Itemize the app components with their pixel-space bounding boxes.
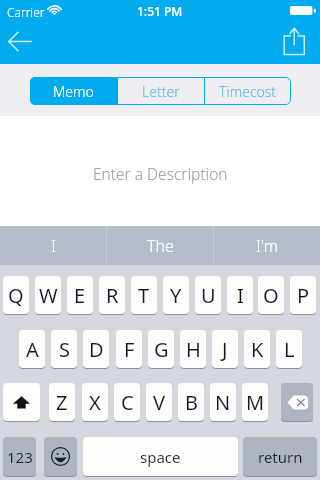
staticText: N [215, 389, 231, 416]
button[interactable]: U [195, 276, 221, 315]
button[interactable]: 123 [3, 437, 36, 477]
staticText: I [51, 235, 56, 257]
staticText: Carrier [7, 4, 45, 20]
staticText: M [246, 389, 265, 416]
staticText: W [39, 282, 58, 309]
button[interactable]: Share [280, 24, 314, 58]
button[interactable]: L [276, 330, 302, 369]
staticText: H [186, 336, 201, 363]
staticText: Q [8, 282, 24, 309]
button[interactable]: Timecost [205, 77, 291, 105]
staticText: Letter [142, 82, 180, 101]
button[interactable]: T [131, 276, 157, 315]
button[interactable]: K [244, 330, 270, 369]
button[interactable]: J [212, 330, 238, 369]
button[interactable]: I'm [214, 226, 320, 265]
button[interactable]: A [19, 330, 45, 369]
staticText: 123 [7, 447, 33, 467]
staticText: Z [56, 389, 68, 416]
staticText: Timecost [219, 82, 277, 101]
button[interactable]: V [146, 383, 172, 422]
button[interactable]: Emoji [44, 437, 77, 477]
staticText: G [154, 336, 169, 363]
staticText: F [124, 336, 135, 363]
staticText: J [222, 336, 228, 363]
button[interactable]: S [51, 330, 77, 369]
button[interactable]: Shift [3, 383, 40, 422]
staticText: O [263, 282, 279, 309]
staticText: B [185, 389, 198, 416]
button[interactable]: R [99, 276, 125, 315]
button[interactable]: M [242, 383, 268, 422]
button[interactable]: G [148, 330, 174, 369]
button[interactable]: space [83, 437, 238, 477]
staticText: T [138, 282, 150, 309]
staticText: K [251, 336, 264, 363]
staticText: The [147, 235, 174, 257]
button[interactable]: W [35, 276, 61, 315]
staticText: S [59, 336, 70, 363]
button[interactable]: Memo [30, 77, 117, 105]
button[interactable]: D [83, 330, 109, 369]
button[interactable]: Z [49, 383, 75, 422]
button[interactable]: C [114, 383, 140, 422]
staticText: return [258, 447, 303, 467]
staticText: R [106, 282, 119, 309]
button[interactable]: return [243, 437, 317, 477]
staticText: X [89, 389, 101, 416]
button[interactable]: H [180, 330, 206, 369]
staticText: U [201, 282, 216, 309]
button[interactable]: I [0, 226, 106, 265]
button[interactable]: E [67, 276, 93, 315]
staticText: Enter a Description [93, 163, 228, 184]
staticText: space [140, 447, 181, 467]
staticText: D [89, 336, 104, 363]
button[interactable]: Q [3, 276, 29, 315]
staticText: I'm [256, 235, 278, 257]
button[interactable]: F [116, 330, 142, 369]
staticText: L [284, 336, 295, 363]
button[interactable]: X [82, 383, 108, 422]
button[interactable]: I [227, 276, 253, 315]
staticText: V [153, 389, 165, 416]
button[interactable]: Letter [118, 77, 204, 105]
staticText: Y [170, 282, 182, 309]
staticText: I [237, 282, 244, 309]
staticText: 1:51 PM [137, 3, 183, 19]
button[interactable]: Delete [281, 383, 313, 422]
button[interactable]: O [258, 276, 284, 315]
button[interactable]: The [107, 226, 213, 265]
button[interactable]: Y [163, 276, 189, 315]
button[interactable]: B [178, 383, 204, 422]
button[interactable]: N [210, 383, 236, 422]
staticText: Memo [53, 82, 94, 101]
staticText: A [26, 336, 39, 363]
staticText: E [74, 282, 86, 309]
button[interactable]: P [290, 276, 316, 315]
staticText: C [121, 389, 134, 416]
button[interactable]: Back [2, 24, 42, 64]
staticText: P [297, 282, 310, 309]
